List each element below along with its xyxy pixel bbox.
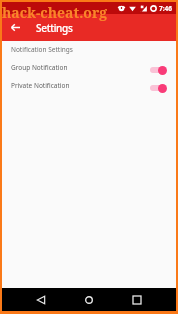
staticText: 7:46 [159,4,172,13]
staticText: hack-cheat.org [2,3,108,22]
button[interactable]: Back [2,14,29,41]
button[interactable]: Private Notification [2,76,176,94]
button[interactable]: Back [29,288,52,311]
staticText: Group Notification [11,63,68,72]
staticText: Private Notification [11,81,70,90]
staticText: Settings [36,21,73,35]
button[interactable]: Group Notification [2,58,176,76]
button[interactable]: Home [77,288,100,311]
button[interactable]: Recent apps [125,288,148,311]
staticText: Notification Settings [11,45,73,54]
